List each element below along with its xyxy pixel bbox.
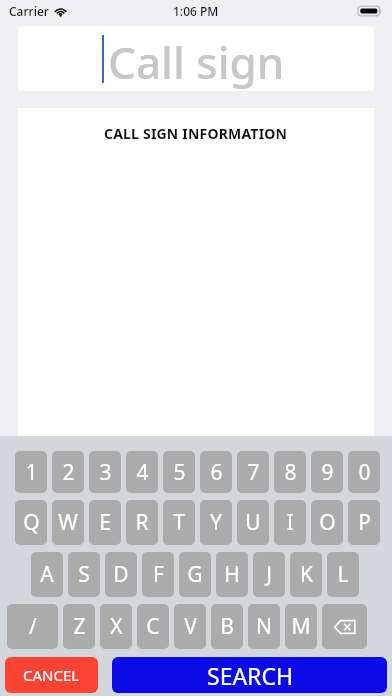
button[interactable]: 7 [237, 451, 269, 493]
staticText: 5 [173, 458, 186, 487]
button[interactable]: / [7, 604, 58, 649]
staticText: W [58, 508, 78, 537]
staticText: 3 [99, 458, 112, 487]
button[interactable]: D [105, 552, 137, 597]
staticText: Call sign [108, 32, 285, 91]
button[interactable]: P [348, 500, 380, 545]
button[interactable]: U [237, 500, 269, 545]
staticText: 7 [247, 458, 260, 487]
staticText: 8 [284, 458, 297, 487]
button[interactable]: W [52, 500, 84, 545]
staticText: L [337, 560, 349, 589]
staticText: P [358, 508, 371, 537]
button[interactable]: 2 [52, 451, 84, 493]
staticText: V [184, 612, 197, 641]
button[interactable]: Q [15, 500, 47, 545]
staticText: C [146, 612, 160, 641]
staticText: S [78, 560, 90, 589]
staticText: K [300, 560, 313, 589]
button[interactable]: 1 [15, 451, 47, 493]
staticText: B [220, 612, 234, 641]
button[interactable]: Z [63, 604, 95, 649]
button[interactable]: E [89, 500, 121, 545]
staticText: CALL SIGN INFORMATION [104, 124, 288, 143]
staticText: J [266, 560, 272, 589]
button[interactable]: R [126, 500, 158, 545]
button[interactable]: I [274, 500, 306, 545]
staticText: 1:06 PM [173, 3, 219, 19]
button[interactable]: V [174, 604, 206, 649]
button[interactable]: 5 [163, 451, 195, 493]
button[interactable]: 0 [348, 451, 380, 493]
button[interactable]: B [211, 604, 243, 649]
button[interactable]: A [31, 552, 63, 597]
button[interactable]: M [285, 604, 317, 649]
button[interactable]: C [137, 604, 169, 649]
button[interactable]: X [100, 604, 132, 649]
button[interactable]: Y [200, 500, 232, 545]
button[interactable]: 3 [89, 451, 121, 493]
button[interactable]: 4 [126, 451, 158, 493]
staticText: CANCEL [23, 665, 80, 685]
button[interactable]: S [68, 552, 100, 597]
button[interactable]: N [248, 604, 280, 649]
staticText: U [245, 508, 261, 537]
staticText: 0 [358, 458, 371, 487]
staticText: N [256, 612, 272, 641]
button[interactable]: Backspace [322, 604, 367, 649]
button[interactable]: Call sign [18, 26, 374, 91]
staticText: D [113, 560, 129, 589]
button[interactable]: T [163, 500, 195, 545]
staticText: / [29, 612, 37, 641]
staticText: G [187, 560, 203, 589]
button[interactable]: 8 [274, 451, 306, 493]
button[interactable]: F [142, 552, 174, 597]
button[interactable]: H [216, 552, 248, 597]
button[interactable]: O [311, 500, 343, 545]
button[interactable]: L [327, 552, 359, 597]
staticText: 4 [136, 458, 149, 487]
staticText: Y [210, 508, 222, 537]
staticText: 1 [25, 458, 38, 487]
staticText: 6 [210, 458, 223, 487]
button[interactable]: G [179, 552, 211, 597]
staticText: O [319, 508, 336, 537]
staticText: Q [23, 508, 40, 537]
staticText: 2 [62, 458, 75, 487]
staticText: H [224, 560, 240, 589]
button[interactable]: J [253, 552, 285, 597]
staticText: R [135, 508, 149, 537]
staticText: A [40, 560, 54, 589]
staticText: I [286, 508, 294, 537]
button[interactable]: K [290, 552, 322, 597]
button[interactable]: 9 [311, 451, 343, 493]
staticText: X [110, 612, 123, 641]
staticText: M [291, 612, 311, 641]
button[interactable]: SEARCH [112, 657, 387, 693]
staticText: SEARCH [207, 660, 293, 691]
button[interactable]: CANCEL [5, 657, 98, 693]
staticText: T [173, 508, 185, 537]
staticText: Carrier [9, 3, 49, 19]
button[interactable]: 6 [200, 451, 232, 493]
staticText: 9 [321, 458, 334, 487]
staticText: Z [73, 612, 86, 641]
staticText: F [153, 560, 164, 589]
staticText: E [99, 508, 111, 537]
